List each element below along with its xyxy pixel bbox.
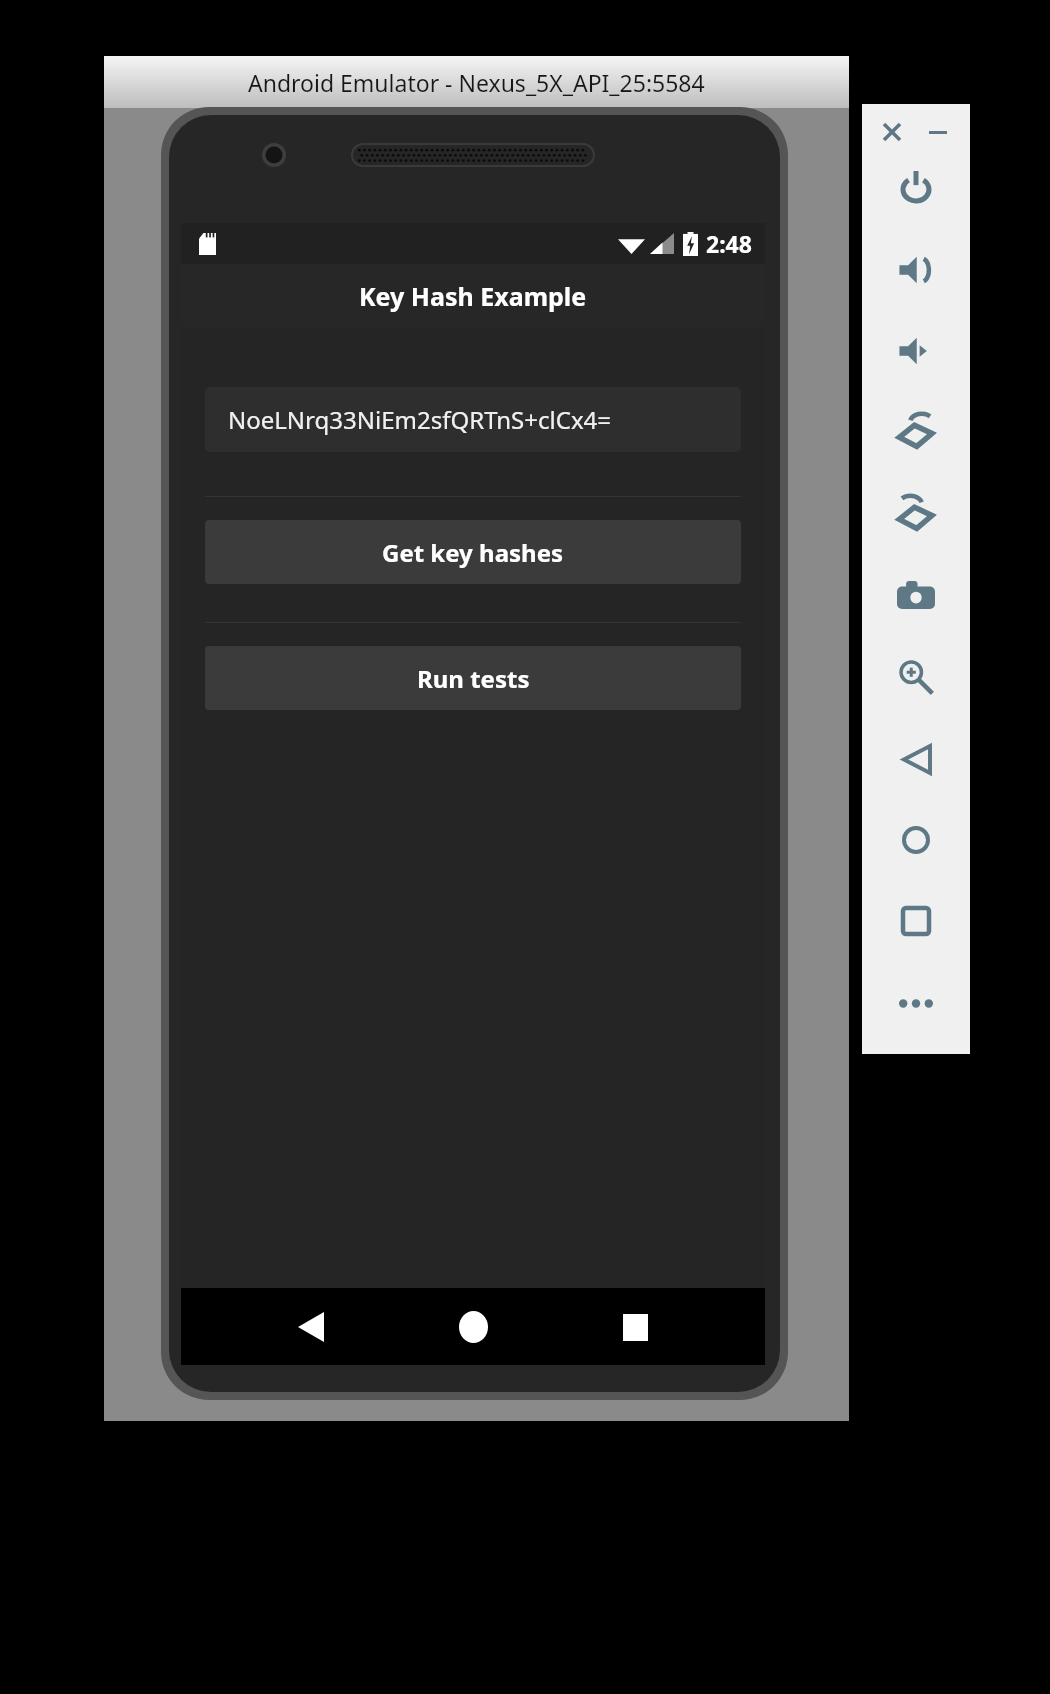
button[interactable]: Power [889,161,943,215]
button[interactable]: Close [870,110,914,154]
button[interactable]: More [889,976,943,1030]
button[interactable]: Volume down [889,324,943,378]
staticText: 2:48 [706,228,752,259]
staticText: NoeLNrq33NiEm2sfQRTnS+clCx4= [228,403,612,436]
button[interactable]: Home [439,1293,507,1361]
button[interactable]: Back [277,1293,345,1361]
button[interactable]: Home [889,813,943,867]
button[interactable]: Recent apps [601,1293,669,1361]
button[interactable]: Overview [889,894,943,948]
button[interactable]: Run tests [205,646,741,710]
button[interactable]: NoeLNrq33NiEm2sfQRTnS+clCx4= [205,387,741,452]
button[interactable]: Volume up [889,243,943,297]
button[interactable]: Minimize [916,110,960,154]
button[interactable]: Rotate left [889,405,943,459]
staticText: Get key hashes [382,536,564,569]
staticText: Run tests [417,662,530,695]
button[interactable]: Rotate right [889,487,943,541]
button[interactable]: Back [889,732,943,786]
button[interactable]: Zoom [889,650,943,704]
button[interactable]: Get key hashes [205,520,741,584]
staticText: Key Hash Example [359,279,587,313]
staticText: Android Emulator - Nexus_5X_API_25:5584 [248,67,705,98]
button[interactable]: Take screenshot [889,568,943,622]
